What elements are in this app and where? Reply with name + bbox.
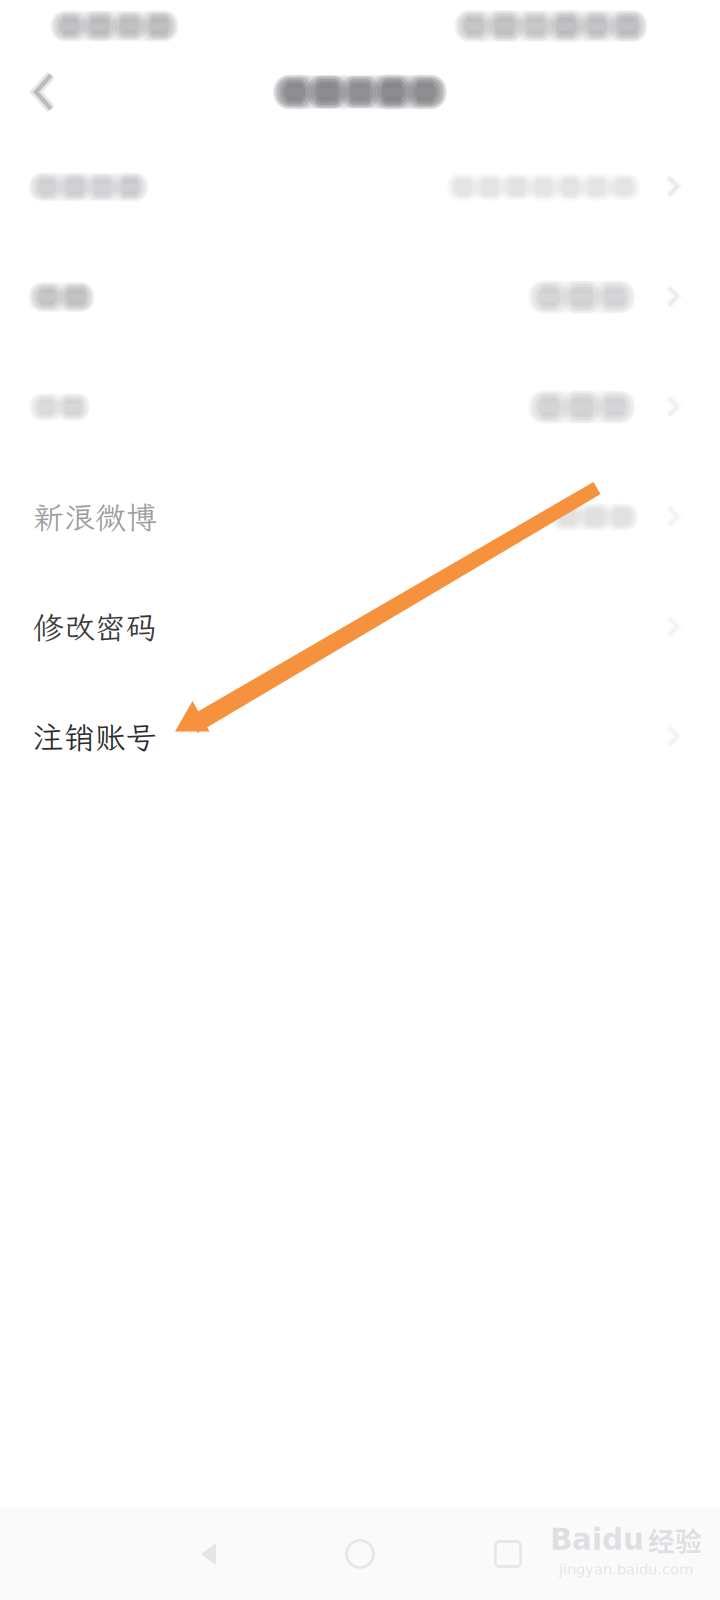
button[interactable]: 修改密码	[0, 572, 720, 682]
button[interactable]: 注销账号	[0, 682, 720, 792]
button[interactable]: Recent apps	[434, 1516, 582, 1592]
button[interactable]	[0, 242, 720, 352]
button[interactable]: 新浪微博	[0, 462, 720, 572]
staticText: Baidu	[550, 1522, 644, 1557]
button[interactable]	[0, 352, 720, 462]
staticText: 经验	[648, 1520, 702, 1559]
staticText: 注销账号	[33, 717, 157, 757]
staticText: 修改密码	[33, 607, 157, 647]
button[interactable]	[0, 132, 720, 242]
staticText: 新浪微博	[33, 497, 157, 537]
button[interactable]: Back	[0, 52, 88, 132]
staticText: jingyan.baidu.com	[559, 1561, 693, 1578]
